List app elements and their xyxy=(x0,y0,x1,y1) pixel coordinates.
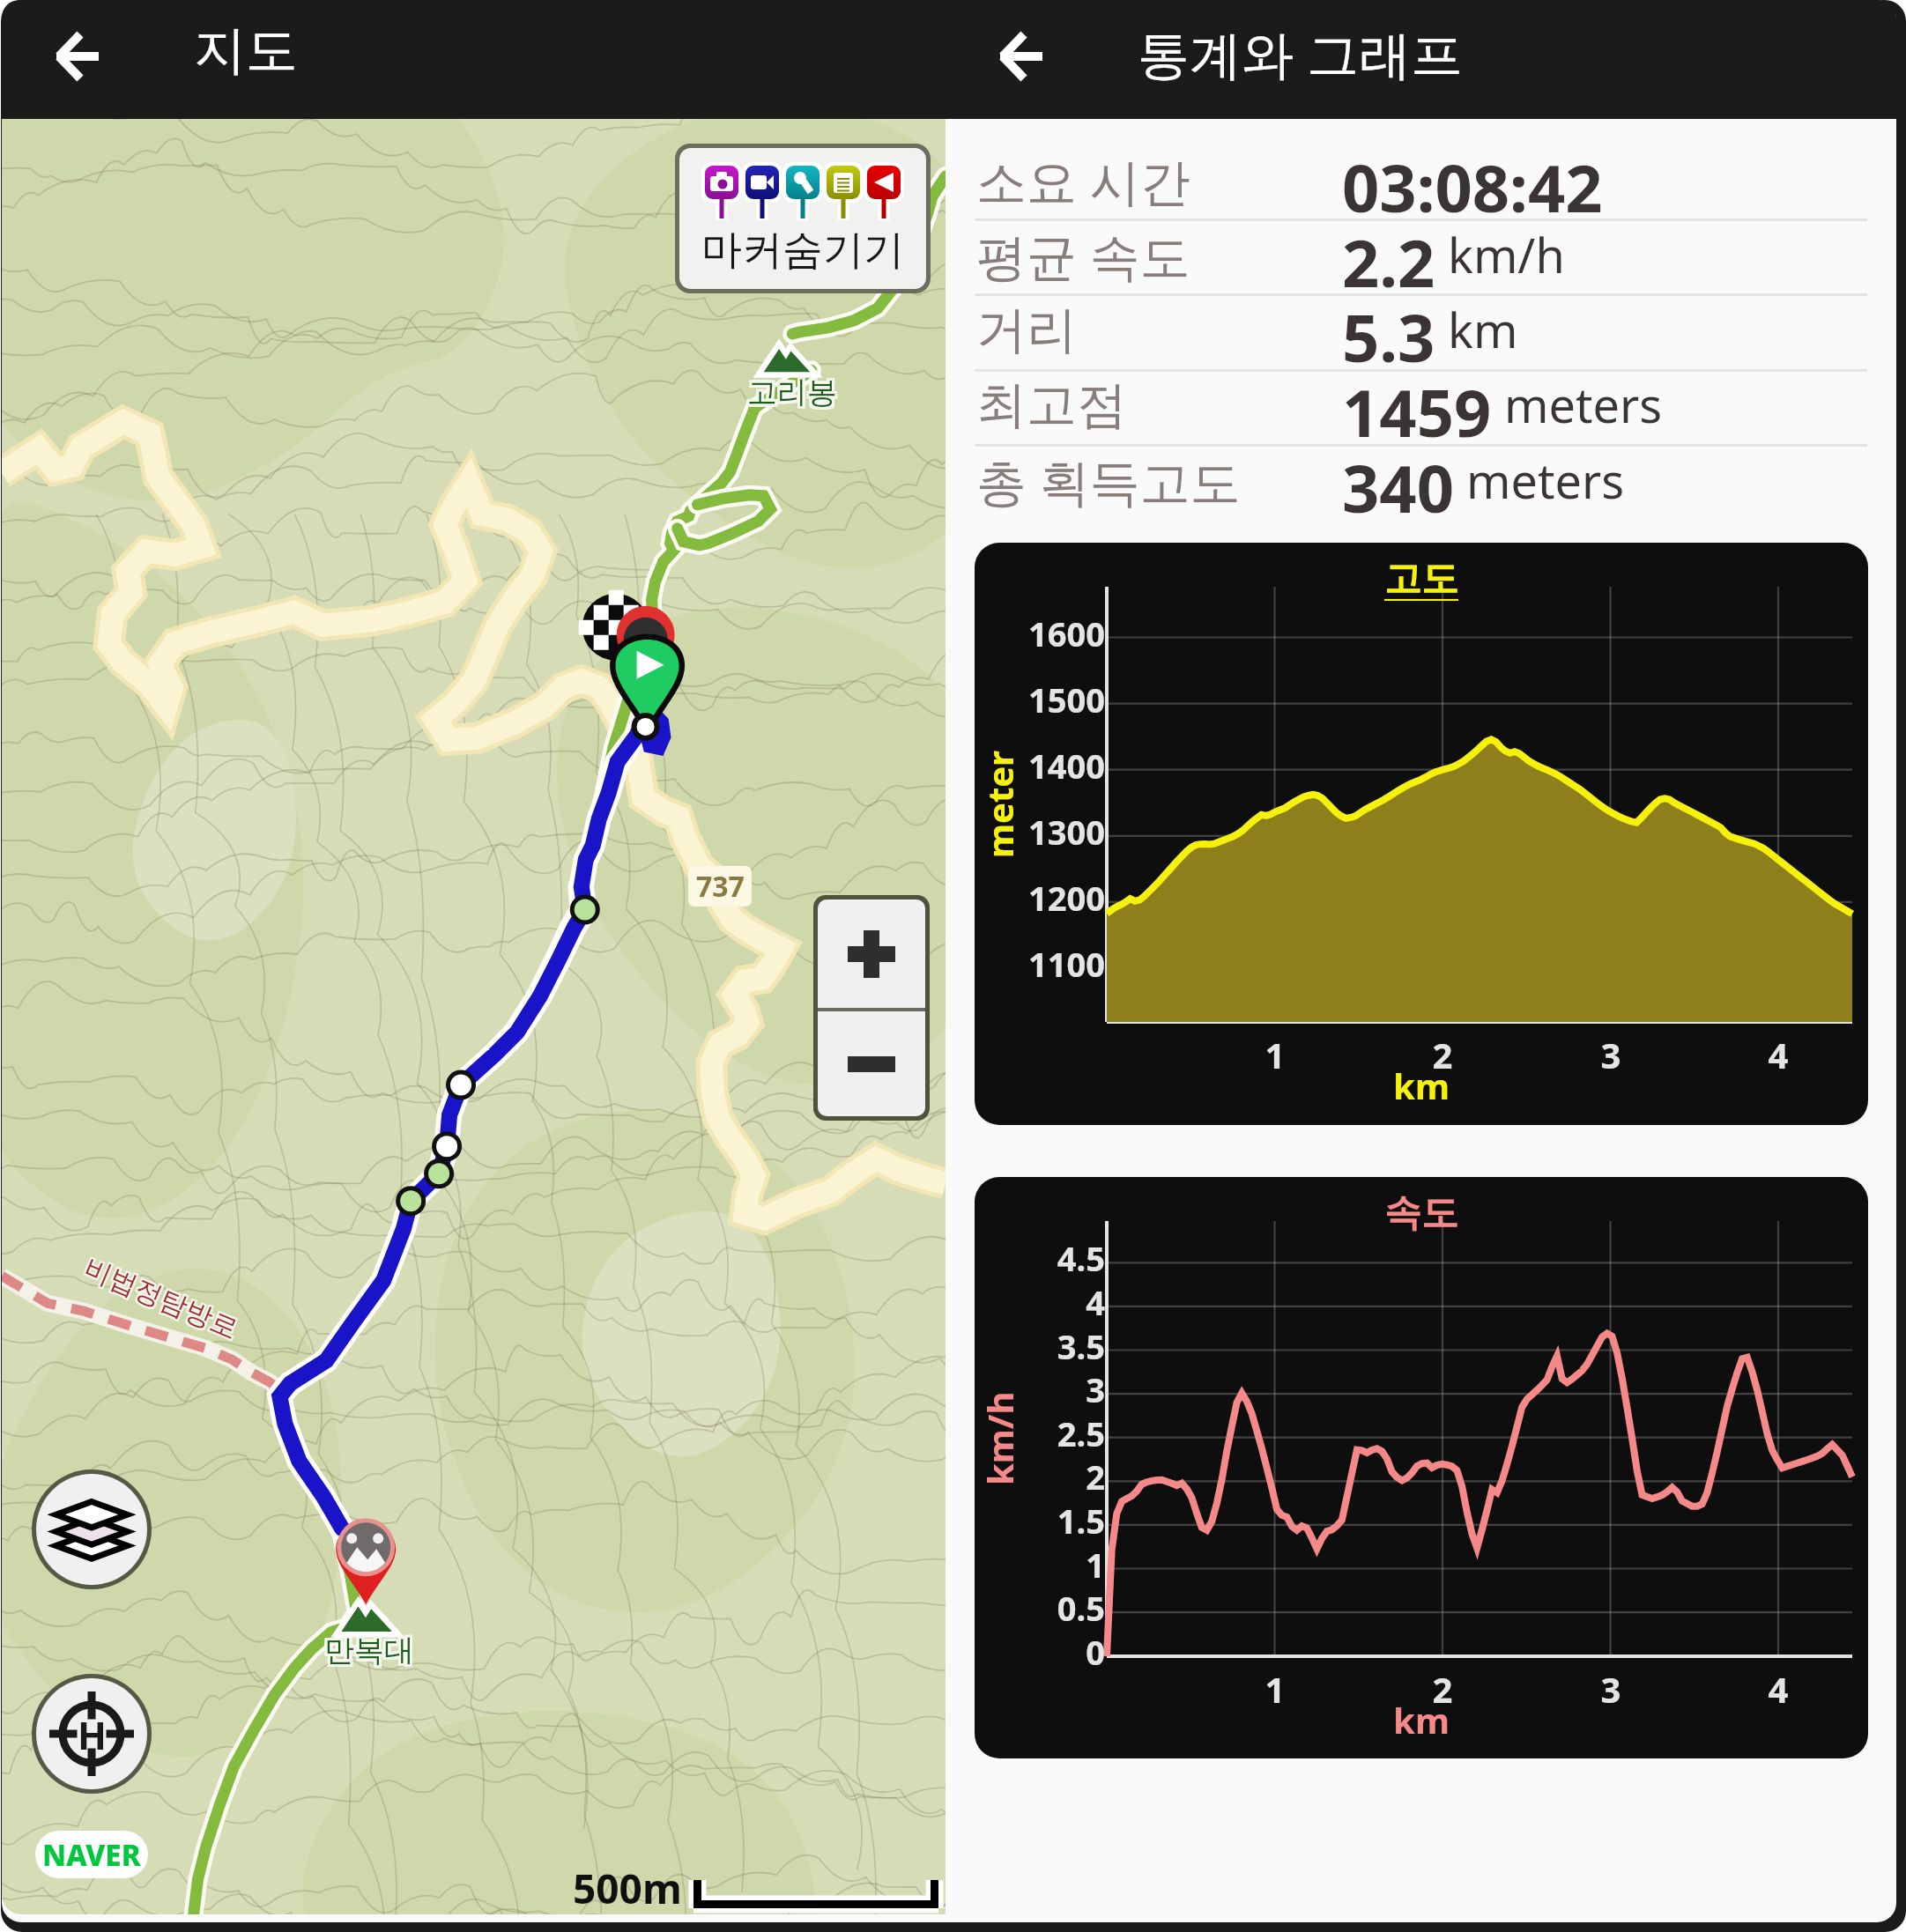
staticText: 3 xyxy=(1567,1665,1655,1713)
staticText: 만복대 xyxy=(324,1629,414,1667)
staticText: 0 xyxy=(992,1629,1105,1675)
staticText: km xyxy=(1435,297,1518,362)
staticText: 1459 xyxy=(1342,367,1492,442)
staticText: 최고점 xyxy=(976,374,1127,437)
button[interactable]: 총 획득고도 xyxy=(946,445,1896,520)
button[interactable]: 소요 시간 xyxy=(946,144,1896,219)
button[interactable]: 4.5 xyxy=(975,1177,1868,1758)
staticText: 2 xyxy=(1398,1031,1487,1078)
staticText: 500m xyxy=(573,1861,682,1916)
staticText: 만복대 xyxy=(324,1634,414,1672)
staticText: 3.5 xyxy=(992,1323,1105,1369)
staticText: 고도 xyxy=(1201,556,1642,603)
staticText: 고리봉 xyxy=(745,374,834,411)
staticText: 1 xyxy=(1231,1665,1319,1713)
staticText: 거리 xyxy=(976,299,1077,362)
staticText: 비법정탐방로 xyxy=(81,1251,245,1347)
button[interactable]: 평균 속도 xyxy=(946,219,1896,294)
staticText: 1300 xyxy=(992,809,1105,855)
staticText: 1 xyxy=(992,1542,1105,1588)
button[interactable]: Map layers xyxy=(36,1474,147,1585)
staticText: 통계와 그래프 xyxy=(1138,18,1464,89)
staticText: 고리봉 xyxy=(747,374,837,411)
button[interactable]: 최고점 xyxy=(946,369,1896,444)
staticText: 737 xyxy=(696,867,745,906)
staticText: NAVER xyxy=(42,1835,141,1875)
staticText: km xyxy=(1201,1696,1642,1743)
staticText: 4 xyxy=(1734,1665,1822,1713)
staticText: 2 xyxy=(992,1454,1105,1499)
button[interactable]: 거리 xyxy=(946,294,1896,369)
staticText: 340 xyxy=(1342,443,1454,518)
staticText: 2.5 xyxy=(992,1410,1105,1456)
staticText: km/h xyxy=(975,1391,1021,1485)
staticText: 만복대 xyxy=(327,1629,417,1667)
staticText: km/h xyxy=(1435,222,1565,287)
staticText: 4.5 xyxy=(992,1235,1105,1281)
staticText: 비법정탐방로 xyxy=(78,1252,243,1348)
staticText: 고리봉 xyxy=(750,371,840,409)
button[interactable]: 마커숨기기 xyxy=(679,148,926,289)
staticText: 마커숨기기 xyxy=(701,225,904,276)
staticText: 만복대 xyxy=(324,1632,414,1669)
staticText: 고리봉 xyxy=(747,371,837,409)
staticText: H xyxy=(78,1709,107,1761)
button[interactable]: Back xyxy=(972,18,1071,95)
staticText: 속도 xyxy=(1201,1190,1642,1237)
button[interactable]: Back xyxy=(28,18,127,95)
staticText: 1 xyxy=(1231,1031,1319,1078)
staticText: 2 xyxy=(1398,1665,1487,1713)
staticText: 03:08:42 xyxy=(1342,143,1603,218)
staticText: 3 xyxy=(992,1366,1105,1412)
staticText: 비법정탐방로 xyxy=(80,1249,244,1344)
button[interactable]: NAVER xyxy=(35,1831,148,1878)
staticText: 비법정탐방로 xyxy=(77,1251,241,1347)
staticText: 비법정탐방로 xyxy=(77,1250,242,1345)
staticText: 비법정탐방로 xyxy=(80,1253,244,1348)
staticText: meters xyxy=(1454,448,1625,513)
button[interactable]: 1600 xyxy=(975,543,1868,1125)
staticText: 1600 xyxy=(992,611,1105,656)
staticText: 0.5 xyxy=(992,1585,1105,1631)
staticText: 만복대 xyxy=(322,1632,412,1669)
button[interactable]: My location xyxy=(36,1678,147,1789)
staticText: 3 xyxy=(1567,1031,1655,1078)
staticText: 4 xyxy=(1734,1031,1822,1078)
staticText: km xyxy=(1201,1062,1642,1109)
staticText: 1200 xyxy=(992,875,1105,921)
staticText: meters xyxy=(1492,372,1663,437)
staticText: 지도 xyxy=(194,18,298,83)
staticText: 비법정탐방로 xyxy=(79,1250,243,1346)
staticText: 비법정탐방로 xyxy=(78,1248,243,1344)
staticText: 고리봉 xyxy=(745,376,834,414)
staticText: 1100 xyxy=(992,941,1105,987)
staticText: 만복대 xyxy=(322,1629,412,1667)
staticText: 만복대 xyxy=(327,1634,417,1672)
staticText: 4 xyxy=(992,1279,1105,1325)
button[interactable]: Zoom out xyxy=(818,1011,925,1116)
staticText: meter xyxy=(975,751,1021,858)
staticText: 2.2 xyxy=(1342,218,1435,292)
staticText: 소요 시간 xyxy=(976,146,1190,215)
staticText: 고리봉 xyxy=(747,376,837,414)
staticText: 1500 xyxy=(992,677,1105,722)
staticText: 고리봉 xyxy=(745,371,834,409)
staticText: 고리봉 xyxy=(750,376,840,414)
staticText: 고리봉 xyxy=(750,374,840,411)
staticText: 5.3 xyxy=(1342,292,1435,367)
staticText: 비법정탐방로 xyxy=(81,1249,246,1345)
button[interactable]: Zoom in xyxy=(818,899,925,1008)
staticText: 평균 속도 xyxy=(976,221,1190,290)
staticText: 만복대 xyxy=(327,1632,417,1669)
staticText: 총 획득고도 xyxy=(976,447,1241,515)
staticText: 1400 xyxy=(992,743,1105,788)
staticText: 1.5 xyxy=(992,1498,1105,1543)
staticText: 만복대 xyxy=(322,1634,412,1672)
